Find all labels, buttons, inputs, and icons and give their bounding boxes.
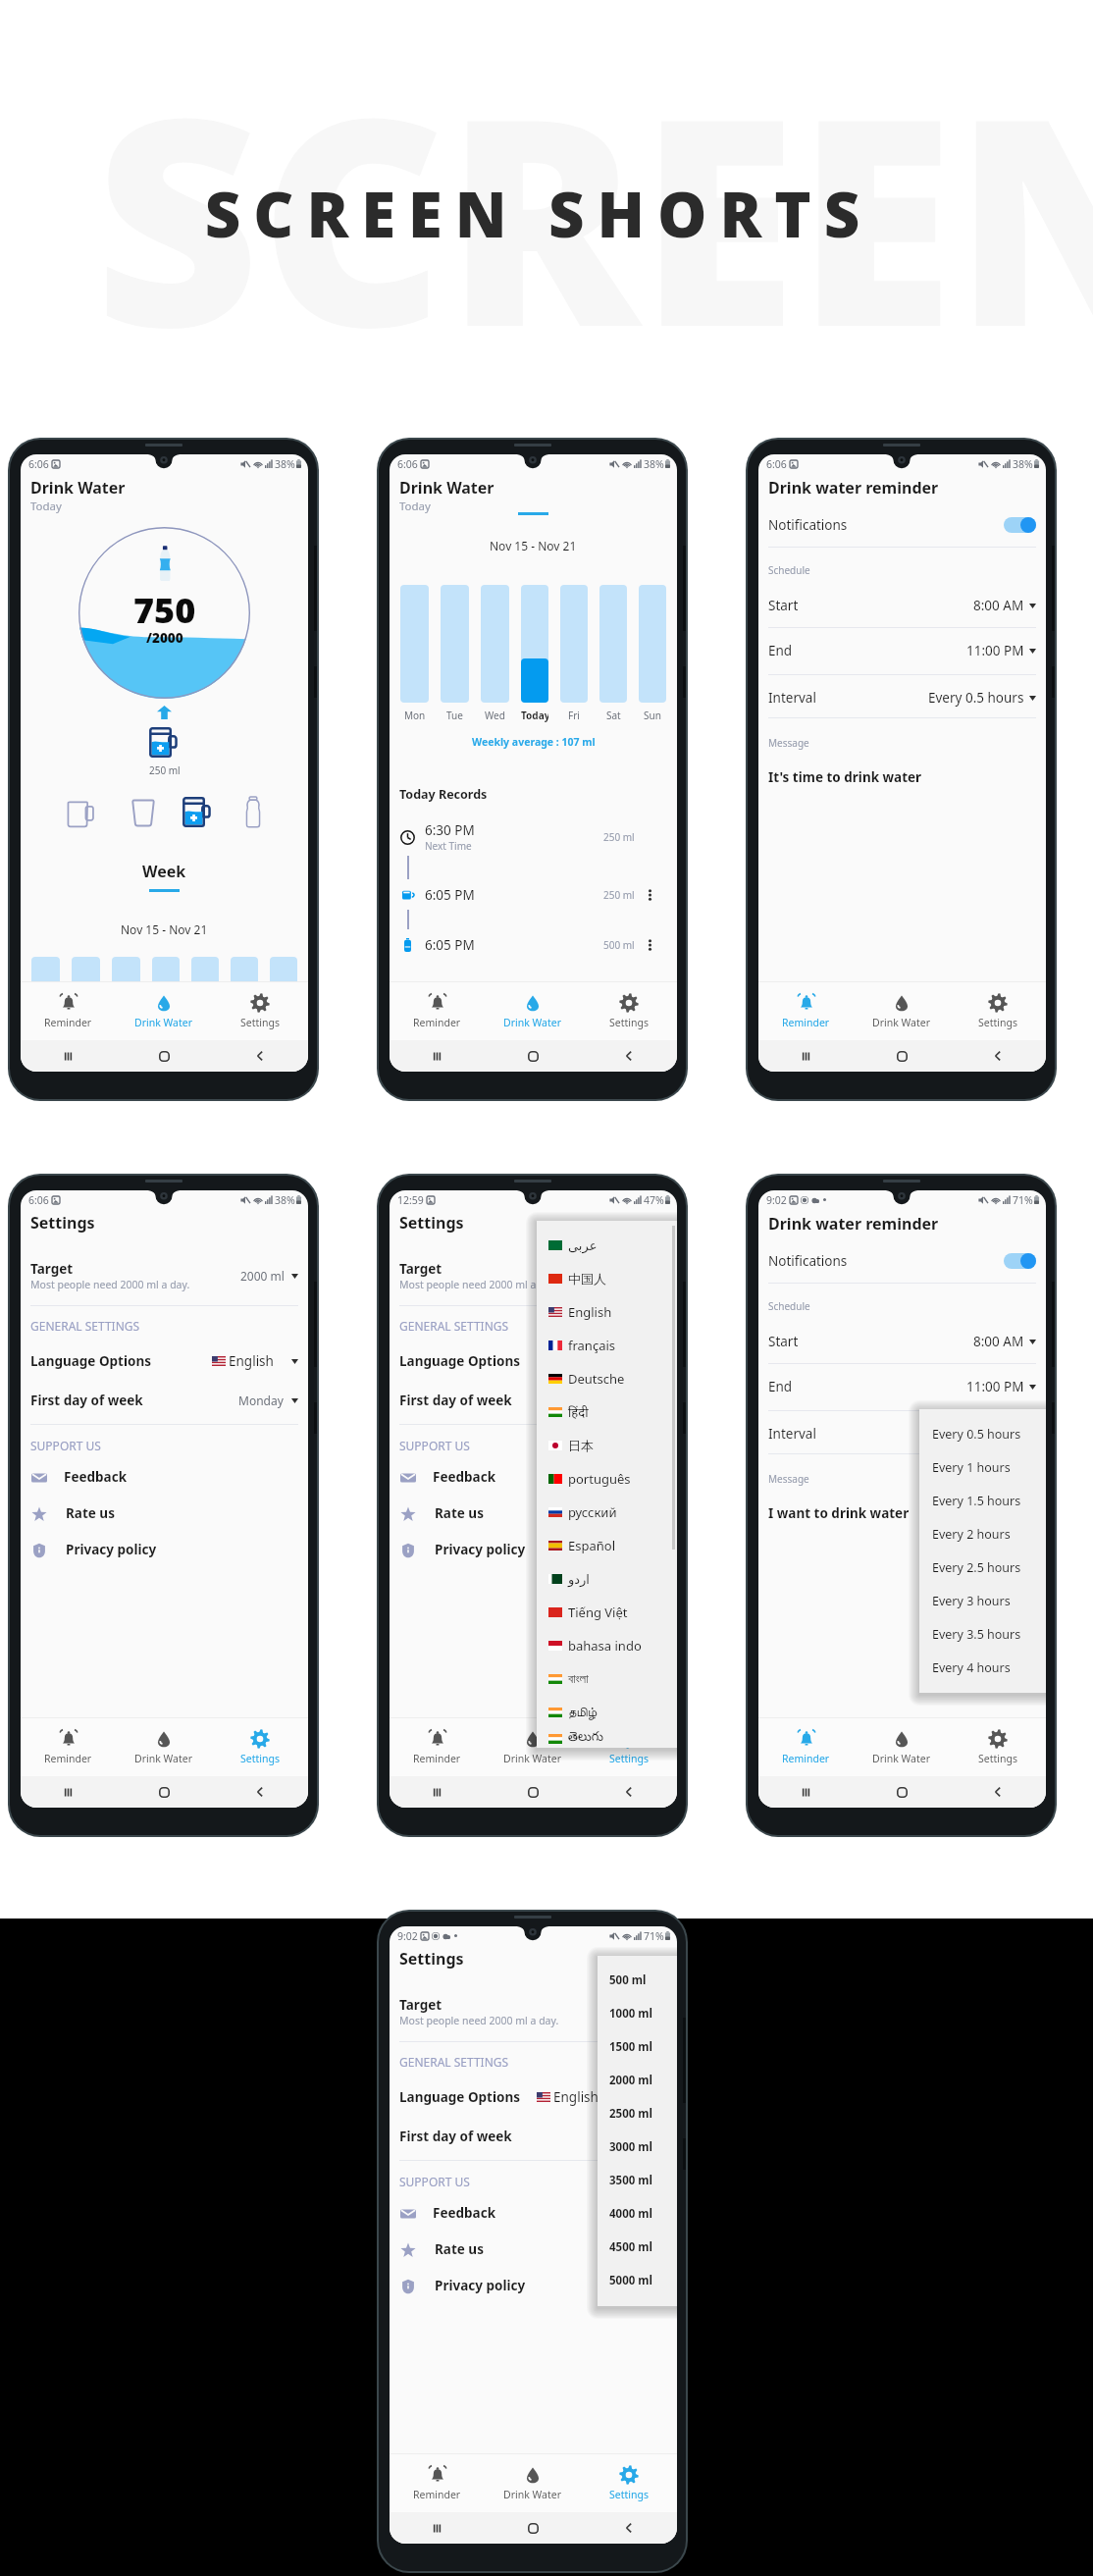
button[interactable]: Deutsche	[548, 1362, 677, 1395]
button[interactable]: Privacy policy	[399, 2271, 667, 2300]
button[interactable]: Drink Water	[116, 982, 212, 1040]
button[interactable]: Settings	[950, 1718, 1046, 1776]
button[interactable]: Every 2 hours	[932, 1517, 1046, 1551]
button[interactable]: Back	[581, 1776, 677, 1808]
button[interactable]: Every 3.5 hours	[932, 1617, 1046, 1651]
button[interactable]: bahasa indo	[548, 1629, 677, 1662]
button[interactable]: Privacy policy	[30, 1535, 298, 1564]
button[interactable]: First day of week	[399, 1389, 667, 1412]
button[interactable]: हिंदी	[548, 1395, 677, 1429]
button[interactable]: 3500 ml	[609, 2164, 677, 2197]
button[interactable]: Drink Water	[485, 2454, 581, 2512]
button[interactable]: Drink Water	[485, 982, 581, 1040]
button[interactable]: Target	[399, 1256, 667, 1295]
button[interactable]: Home	[485, 1040, 581, 1072]
button[interactable]: Every 1 hours	[932, 1450, 1046, 1484]
button[interactable]: More options	[644, 939, 655, 951]
button[interactable]: Language Options	[399, 2085, 667, 2109]
button[interactable]: Language Options	[30, 1349, 298, 1373]
button[interactable]: português	[548, 1462, 677, 1496]
button[interactable]: Back	[950, 1040, 1046, 1072]
button[interactable]: Home	[485, 1776, 581, 1808]
button[interactable]: Home	[854, 1776, 950, 1808]
button[interactable]: Tiếng Việt	[548, 1596, 677, 1629]
button[interactable]: Glass	[131, 798, 155, 828]
button[interactable]: русский	[548, 1496, 677, 1529]
button[interactable]: Recents	[758, 1776, 854, 1808]
button[interactable]: Recents	[21, 1040, 116, 1072]
button[interactable]: Every 1.5 hours	[932, 1484, 1046, 1517]
button[interactable]: Privacy policy	[399, 1535, 667, 1564]
button[interactable]: Notifications	[768, 1247, 1036, 1275]
button[interactable]: اردو	[548, 1562, 677, 1596]
button[interactable]: Every 4 hours	[932, 1651, 1046, 1684]
button[interactable]: Add 250 ml	[148, 726, 181, 759]
button[interactable]: Drink Water	[854, 1718, 950, 1776]
button[interactable]: Recents	[390, 1040, 485, 1072]
button[interactable]: عربى	[548, 1229, 677, 1262]
button[interactable]: 2000 ml	[609, 2064, 677, 2097]
button[interactable]: Rate us	[30, 1498, 298, 1528]
button[interactable]: Home	[116, 1040, 212, 1072]
button[interactable]: First day of week	[30, 1389, 298, 1412]
button[interactable]: Every 3 hours	[932, 1584, 1046, 1617]
button[interactable]: 6:05 PM	[399, 929, 655, 960]
button[interactable]: 6:05 PM	[399, 879, 655, 910]
button[interactable]: Recents	[390, 1776, 485, 1808]
button[interactable]: Home	[116, 1776, 212, 1808]
button[interactable]: Reminder	[390, 2454, 485, 2512]
button[interactable]: Target	[399, 1992, 667, 2031]
button[interactable]: Recents	[21, 1776, 116, 1808]
button[interactable]: Bottle	[245, 796, 261, 828]
button[interactable]: Settings	[950, 982, 1046, 1040]
button[interactable]: Home	[854, 1040, 950, 1072]
button[interactable]: বাংলা	[548, 1662, 677, 1696]
button[interactable]: Week	[127, 861, 202, 896]
button[interactable]: తెలుగు	[548, 1729, 677, 1748]
button[interactable]: Target	[30, 1256, 298, 1295]
button[interactable]: End	[768, 638, 1036, 663]
button[interactable]: First day of week	[399, 2125, 667, 2148]
button[interactable]: 4500 ml	[609, 2231, 677, 2264]
button[interactable]: Settings	[581, 982, 677, 1040]
button[interactable]: Drink Water	[116, 1718, 212, 1776]
button[interactable]: Drink Water	[485, 1718, 581, 1776]
button[interactable]: Drink Water	[854, 982, 950, 1040]
button[interactable]: Feedback	[399, 1462, 667, 1492]
button[interactable]: Interval	[768, 685, 1036, 710]
button[interactable]: Reminder	[21, 982, 116, 1040]
button[interactable]: Rate us	[399, 2234, 667, 2264]
button[interactable]: Back	[581, 1040, 677, 1072]
button[interactable]: Reminder	[390, 1718, 485, 1776]
button[interactable]: Settings	[212, 982, 308, 1040]
button[interactable]: Settings	[581, 2454, 677, 2512]
button[interactable]: Español	[548, 1529, 677, 1562]
button[interactable]: Back	[212, 1040, 308, 1072]
button[interactable]: Back	[581, 2512, 677, 2544]
button[interactable]: 500 ml	[609, 1964, 677, 1997]
button[interactable]: Feedback	[30, 1462, 298, 1492]
button[interactable]: Every 0.5 hours	[932, 1417, 1046, 1450]
button[interactable]: Recents	[758, 1040, 854, 1072]
button[interactable]: 6:30 PM	[399, 818, 655, 856]
button[interactable]: Back	[950, 1776, 1046, 1808]
button[interactable]: Reminder	[758, 982, 854, 1040]
button[interactable]: Interval	[768, 1421, 1036, 1446]
button[interactable]: Back	[212, 1776, 308, 1808]
button[interactable]: 1000 ml	[609, 1997, 677, 2030]
button[interactable]: More options	[644, 889, 655, 901]
button[interactable]: 中国人	[548, 1262, 677, 1295]
button[interactable]: Language Options	[399, 1349, 667, 1373]
button[interactable]: 5000 ml	[609, 2264, 677, 2297]
button[interactable]: français	[548, 1329, 677, 1362]
button[interactable]: Rate us	[399, 1498, 667, 1528]
button[interactable]: Settings	[581, 1718, 677, 1776]
button[interactable]: Start	[768, 593, 1036, 618]
button[interactable]: Reminder	[21, 1718, 116, 1776]
button[interactable]: Reminder	[390, 982, 485, 1040]
button[interactable]: 2500 ml	[609, 2097, 677, 2130]
button[interactable]: தமிழ்	[548, 1696, 677, 1729]
button[interactable]: 1500 ml	[609, 2030, 677, 2064]
button[interactable]: Reminder	[758, 1718, 854, 1776]
button[interactable]: Feedback	[399, 2198, 667, 2228]
